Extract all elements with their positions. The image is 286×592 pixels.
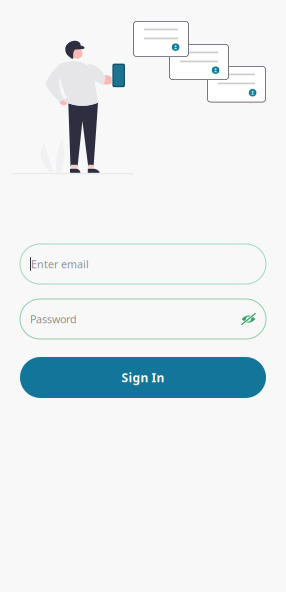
- staticText: Enter email: [31, 257, 89, 271]
- button[interactable]: Password: [20, 299, 266, 339]
- staticText: Password: [30, 312, 77, 326]
- button[interactable]: Sign In: [20, 357, 266, 398]
- button[interactable]: Enter email: [20, 244, 266, 284]
- staticText: Sign In: [121, 369, 164, 385]
